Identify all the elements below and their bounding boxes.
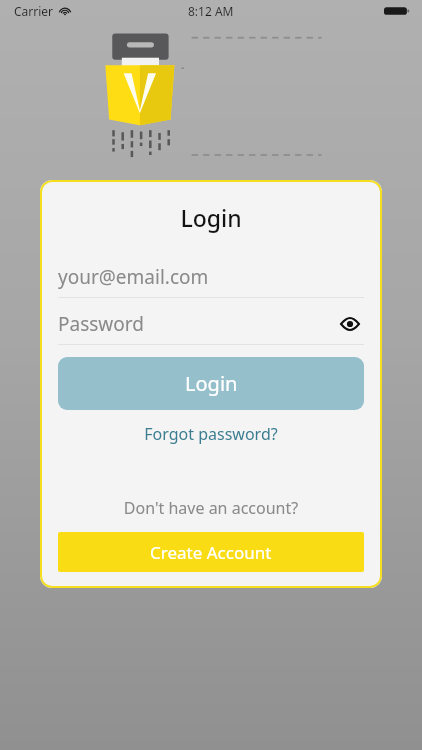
button[interactable]: Forgot password? bbox=[58, 423, 364, 445]
staticText: Forgot password? bbox=[144, 423, 278, 445]
staticText: Login bbox=[185, 370, 238, 397]
button[interactable]: Password bbox=[58, 304, 364, 344]
staticText: your@email.com bbox=[58, 264, 209, 290]
staticText: 8:12 AM bbox=[188, 3, 234, 19]
button[interactable]: Login bbox=[58, 357, 364, 410]
button[interactable]: Create Account bbox=[58, 532, 364, 572]
staticText: Login bbox=[58, 202, 364, 233]
staticText: Don't have an account? bbox=[58, 497, 364, 519]
button[interactable]: your@email.com bbox=[58, 257, 364, 297]
button[interactable]: Show password bbox=[336, 310, 364, 338]
staticText: Create Account bbox=[150, 541, 272, 564]
staticText: Carrier bbox=[14, 3, 54, 19]
staticText: Password bbox=[58, 311, 336, 337]
